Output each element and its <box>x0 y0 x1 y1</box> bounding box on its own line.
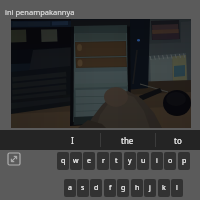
button[interactable]: p <box>178 152 190 170</box>
button[interactable]: a <box>64 179 76 197</box>
staticText: f <box>109 183 112 193</box>
staticText: y <box>128 156 132 166</box>
staticText: I <box>71 135 74 146</box>
staticText: d <box>94 183 99 193</box>
button[interactable]: g <box>117 179 129 197</box>
button[interactable]: j <box>144 179 156 197</box>
staticText: the <box>121 135 134 146</box>
staticText: o <box>168 156 173 166</box>
staticText: g <box>121 183 126 193</box>
button[interactable]: t <box>110 152 122 170</box>
button[interactable]: y <box>124 152 136 170</box>
button[interactable]: s <box>77 179 89 197</box>
button[interactable]: f <box>104 179 116 197</box>
button[interactable]: the <box>100 130 155 150</box>
staticText: r <box>102 156 105 166</box>
button[interactable]: I <box>45 130 100 150</box>
staticText: to <box>174 135 182 146</box>
button[interactable]: Resize keyboard <box>8 153 20 165</box>
staticText: s <box>81 183 85 193</box>
staticText: i <box>156 156 158 166</box>
button[interactable]: k <box>158 179 170 197</box>
staticText: w <box>73 156 79 166</box>
button[interactable]: r <box>97 152 109 170</box>
button[interactable]: d <box>90 179 102 197</box>
staticText: ini penampakannya <box>5 7 75 17</box>
button[interactable]: i <box>151 152 163 170</box>
button[interactable]: u <box>137 152 149 170</box>
staticText: h <box>135 183 140 193</box>
button[interactable]: h <box>131 179 143 197</box>
button[interactable]: q <box>57 152 69 170</box>
button[interactable]: l <box>171 179 183 197</box>
staticText: a <box>68 183 72 193</box>
button[interactable]: e <box>83 152 95 170</box>
button[interactable]: to <box>155 130 200 150</box>
staticText: l <box>176 183 178 193</box>
button[interactable]: o <box>164 152 176 170</box>
staticText: e <box>87 156 91 166</box>
staticText: k <box>162 183 166 193</box>
button[interactable]: w <box>70 152 82 170</box>
staticText: j <box>149 183 151 193</box>
staticText: t <box>115 156 118 166</box>
staticText: q <box>61 156 66 166</box>
staticText: p <box>182 156 187 166</box>
staticText: u <box>141 156 146 166</box>
